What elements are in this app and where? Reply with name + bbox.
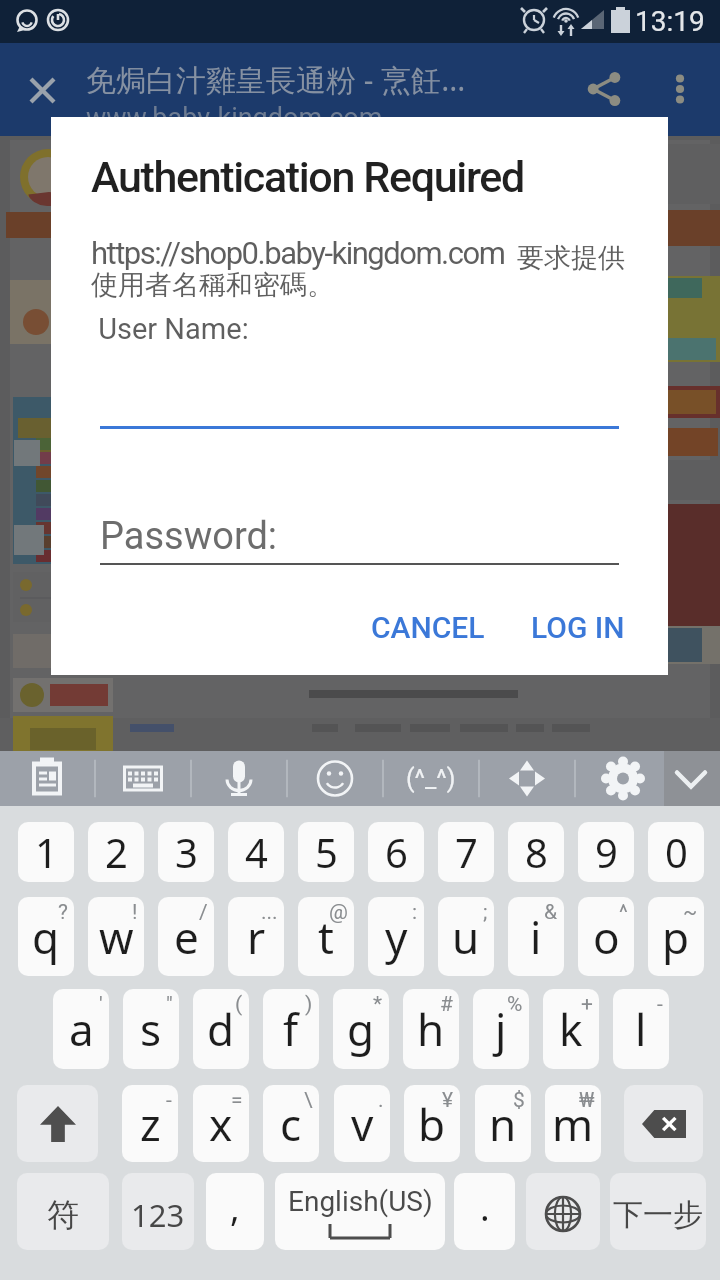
staticText: 7 xyxy=(455,825,478,879)
staticText: w xyxy=(99,907,134,967)
staticText: y xyxy=(385,907,408,967)
button[interactable]: Keyboard tool xyxy=(397,751,465,806)
button[interactable]: Hide keyboard xyxy=(600,751,720,806)
button[interactable]: ₩ xyxy=(545,1085,601,1162)
button[interactable]: # xyxy=(403,989,459,1069)
button[interactable]: CANCEL xyxy=(355,600,501,655)
button[interactable]: $ xyxy=(475,1085,531,1162)
button[interactable]: Keyboard tool xyxy=(589,751,657,806)
button[interactable]: = xyxy=(193,1085,249,1162)
button[interactable]: ~ xyxy=(648,897,704,976)
staticText: \ xyxy=(304,1088,313,1113)
button[interactable]: (^_^) xyxy=(393,751,469,806)
button[interactable]: globe xyxy=(526,1173,600,1250)
button[interactable]: , xyxy=(206,1173,264,1250)
staticText: 要求提供 xyxy=(517,241,625,275)
button[interactable]: " xyxy=(123,989,179,1069)
staticText: 0 xyxy=(665,825,688,879)
button[interactable]: - xyxy=(613,989,669,1069)
button[interactable]: % xyxy=(473,989,529,1069)
staticText: & xyxy=(544,900,558,925)
button[interactable]: 2 xyxy=(88,822,144,882)
button[interactable]: 下一步 xyxy=(610,1173,706,1250)
staticText: a xyxy=(69,999,94,1059)
staticText: , xyxy=(230,1183,240,1232)
staticText: 符 xyxy=(47,1195,79,1235)
button[interactable]: & xyxy=(508,897,564,976)
staticText: h xyxy=(417,999,445,1059)
button[interactable]: - xyxy=(122,1085,178,1162)
staticText: l xyxy=(635,999,647,1059)
button[interactable]: Keyboard tool xyxy=(205,751,273,806)
button[interactable]: 0 xyxy=(648,822,704,882)
button[interactable]: ! xyxy=(88,897,144,976)
button[interactable]: ' xyxy=(53,989,109,1069)
staticText: (^_^) xyxy=(406,764,456,793)
button[interactable]: 7 xyxy=(438,822,494,882)
staticText: c xyxy=(280,1094,302,1154)
staticText: - xyxy=(166,1088,172,1113)
button[interactable]: . xyxy=(454,1173,515,1250)
button[interactable]: ( xyxy=(193,989,249,1069)
button[interactable]: ¥ xyxy=(404,1085,460,1162)
button[interactable]: 符 xyxy=(17,1173,109,1250)
staticText: 5 xyxy=(315,825,338,879)
button[interactable]: . xyxy=(334,1085,390,1162)
staticText: User Name: xyxy=(91,312,249,346)
button[interactable]: Share xyxy=(576,61,632,117)
staticText: / xyxy=(199,900,208,925)
button[interactable]: 123 xyxy=(122,1173,194,1250)
staticText: t xyxy=(318,907,334,967)
button[interactable]: * xyxy=(333,989,389,1069)
button[interactable]: : xyxy=(368,897,424,976)
staticText: o xyxy=(593,907,620,967)
button[interactable]: Keyboard tool xyxy=(13,751,81,806)
staticText: English(US) xyxy=(288,1185,433,1218)
button[interactable]: ^ xyxy=(578,897,634,976)
button[interactable]: / xyxy=(158,897,214,976)
button[interactable]: 4 xyxy=(228,822,284,882)
staticText: ₩ xyxy=(579,1088,595,1113)
button[interactable]: More options xyxy=(652,61,708,117)
staticText: ~ xyxy=(683,900,698,925)
staticText: q xyxy=(32,907,60,967)
staticText: f xyxy=(283,999,299,1059)
staticText: 下一步 xyxy=(613,1196,703,1234)
button[interactable]: ... xyxy=(228,897,284,976)
staticText: % xyxy=(507,992,523,1017)
staticText: - xyxy=(657,992,663,1017)
button[interactable]: 5 xyxy=(298,822,354,882)
staticText: CANCEL xyxy=(371,610,485,645)
staticText: Authentication Required xyxy=(91,152,524,202)
button[interactable]: @ xyxy=(298,897,354,976)
button[interactable]: ) xyxy=(263,989,319,1069)
staticText: + xyxy=(581,992,593,1017)
button[interactable]: English(US) xyxy=(275,1173,445,1250)
button[interactable]: back xyxy=(624,1085,703,1162)
button[interactable]: + xyxy=(543,989,599,1069)
staticText: * xyxy=(373,992,383,1017)
staticText: r xyxy=(247,907,266,967)
staticText: 4 xyxy=(245,825,268,879)
staticText: v xyxy=(351,1094,374,1154)
button[interactable]: 6 xyxy=(368,822,424,882)
staticText: k xyxy=(559,999,583,1059)
button[interactable]: \ xyxy=(263,1085,319,1162)
button[interactable]: Keyboard tool xyxy=(493,751,561,806)
button[interactable]: Keyboard tool xyxy=(301,751,369,806)
button[interactable]: ; xyxy=(438,897,494,976)
button[interactable]: 9 xyxy=(578,822,634,882)
button[interactable]: 1 xyxy=(18,822,74,882)
button[interactable]: Close xyxy=(14,62,70,118)
button[interactable]: 3 xyxy=(158,822,214,882)
button[interactable]: Keyboard tool xyxy=(109,751,177,806)
staticText: u xyxy=(452,907,480,967)
staticText: ^ xyxy=(619,900,628,925)
staticText: # xyxy=(440,992,453,1017)
staticText: ) xyxy=(305,992,313,1017)
button[interactable]: 8 xyxy=(508,822,564,882)
button[interactable]: ? xyxy=(18,897,74,976)
button[interactable]: shift xyxy=(17,1085,98,1162)
button[interactable]: LOG IN xyxy=(515,600,641,655)
staticText: s xyxy=(140,999,162,1059)
